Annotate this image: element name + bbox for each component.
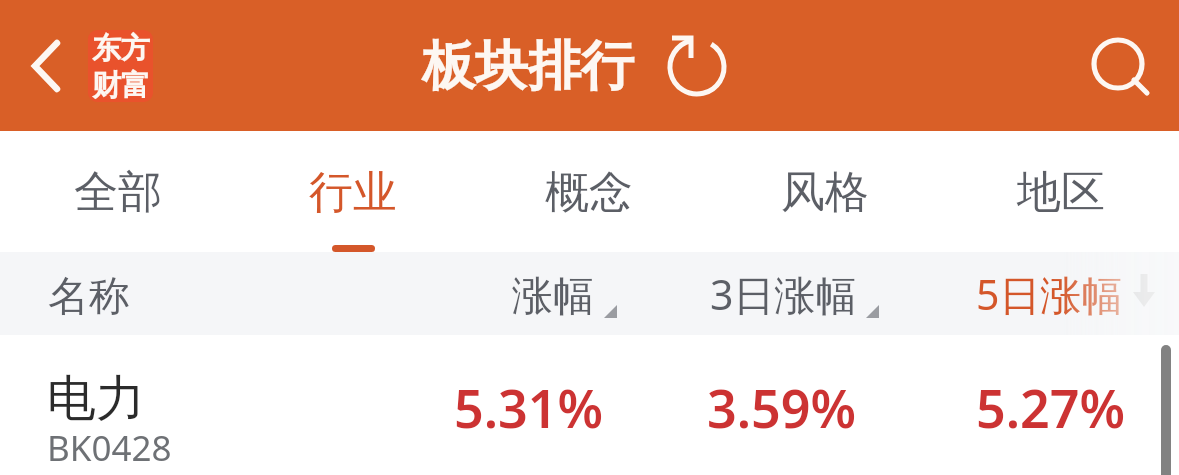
staticText: 3日涨幅 [710, 266, 857, 322]
button[interactable]: 3日涨幅 [698, 252, 845, 335]
staticText: 名称 [48, 271, 130, 323]
staticText: 5日涨幅 [976, 266, 1123, 322]
staticText: 东方 [92, 30, 150, 67]
button[interactable]: Refresh [661, 31, 733, 103]
button[interactable]: 5日涨幅 [964, 252, 1111, 335]
staticText: 5.31% [454, 372, 604, 443]
button[interactable]: Back [10, 22, 82, 110]
button[interactable]: 风格 [707, 131, 943, 252]
staticText: 板块排行 [422, 33, 634, 100]
staticText: 5.27% [976, 372, 1126, 443]
staticText: 财富 [92, 67, 150, 102]
button[interactable]: 电力 [0, 335, 1179, 475]
button[interactable]: 概念 [471, 131, 707, 252]
staticText: 全部 [74, 165, 162, 220]
button[interactable]: 涨幅 [500, 252, 582, 335]
button[interactable]: 行业 [235, 131, 471, 252]
button[interactable]: 东方财富 [88, 30, 153, 102]
staticText: 概念 [545, 165, 633, 220]
staticText: 地区 [1017, 165, 1105, 220]
button[interactable]: Search [1078, 24, 1158, 104]
staticText: 电力 [47, 368, 145, 430]
button[interactable]: 地区 [943, 131, 1179, 252]
staticText: 涨幅 [512, 271, 594, 323]
staticText: 风格 [781, 165, 869, 220]
staticText: BK0428 [47, 424, 172, 472]
staticText: 行业 [309, 165, 397, 220]
button[interactable]: 全部 [0, 131, 235, 252]
staticText: 3.59% [707, 372, 857, 443]
